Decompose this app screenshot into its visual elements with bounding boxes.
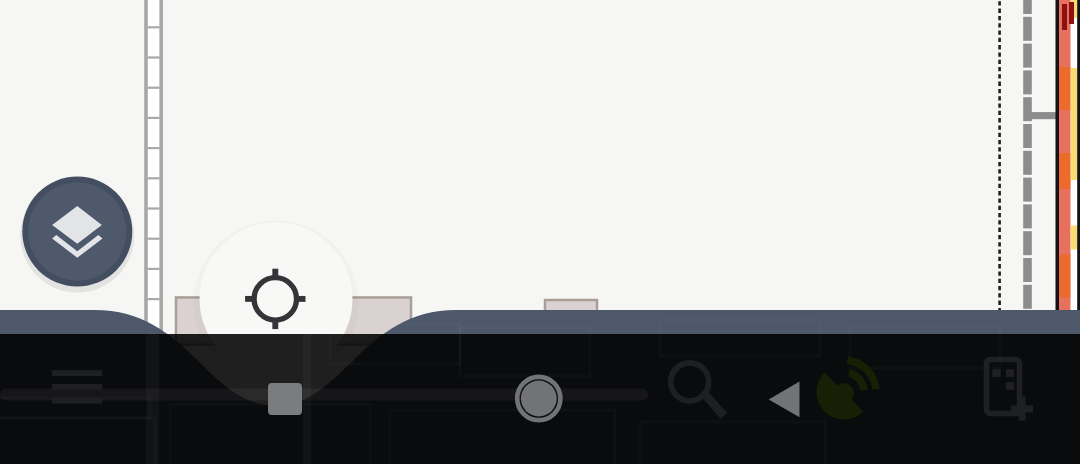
button[interactable]: My location: [200, 222, 353, 375]
button[interactable]: Stop recording: [245, 360, 325, 440]
button[interactable]: Map layers: [23, 177, 132, 286]
button[interactable]: Back: [752, 360, 828, 436]
button[interactable]: Menu: [30, 352, 125, 432]
button[interactable]: Search: [650, 352, 736, 438]
button[interactable]: Record track: [498, 359, 578, 439]
button[interactable]: Add place: [972, 350, 1058, 436]
button[interactable]: GPS status: [812, 352, 892, 432]
